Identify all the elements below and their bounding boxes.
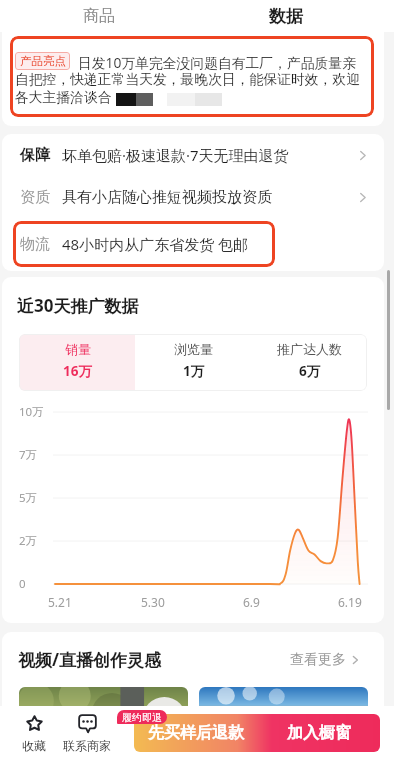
staticText: 6万 (299, 362, 321, 380)
other: 收藏 (25, 714, 44, 733)
staticText: 销量 (65, 341, 91, 357)
staticText: 日发10万单完全没问题自有工厂，产品质量亲 (78, 53, 356, 72)
staticText: 0 (19, 576, 26, 592)
button[interactable]: 联系商家 (58, 706, 116, 770)
button[interactable]: 浏览量 (135, 334, 251, 391)
staticText: 视频/直播创作灵感 (18, 648, 162, 671)
button[interactable] (19, 687, 188, 727)
button[interactable]: 销量 (19, 334, 135, 391)
staticText: 联系商家 (63, 738, 111, 753)
staticText: 浏览量 (174, 341, 213, 357)
staticText: 自把控，快递正常当天发，最晚次日，能保证时效，欢迎 (15, 71, 360, 88)
staticText: 5.30 (141, 594, 165, 610)
staticText: 物流 (20, 235, 50, 254)
staticText: 推广达人数 (277, 341, 342, 357)
button[interactable]: 商品 (68, 0, 129, 32)
staticText: 5万 (19, 490, 38, 506)
staticText: 加入橱窗 (287, 723, 351, 743)
staticText: 7万 (19, 447, 38, 463)
staticText: 产品亮点 (20, 54, 66, 68)
button[interactable]: 加入橱窗 (257, 714, 380, 752)
other: 联系商家 (78, 714, 97, 733)
staticText: 2万 (19, 533, 38, 549)
button[interactable]: 物流 (13, 221, 275, 267)
button[interactable]: 收藏 (5, 706, 63, 770)
staticText: 各大主播洽谈合 (15, 89, 112, 106)
staticText: 收藏 (22, 738, 46, 753)
staticText: 查看更多 (290, 651, 346, 669)
staticText: 履约即退 (122, 711, 162, 724)
button[interactable]: 推广达人数 (251, 334, 367, 391)
staticText: 1万 (183, 362, 205, 380)
button[interactable]: 先买样后退款 (134, 714, 257, 752)
staticText: 5.21 (48, 594, 72, 610)
staticText: 10万 (19, 404, 44, 420)
staticText: 保障 (20, 146, 50, 165)
staticText: 48小时内从广东省发货 包邮 (62, 234, 249, 254)
button[interactable] (199, 687, 368, 727)
staticText: 具有小店随心推短视频投放资质 (62, 188, 272, 207)
staticText: 坏单包赔·极速退款·7天无理由退货 (62, 145, 289, 165)
staticText: 6.19 (338, 594, 362, 610)
staticText: 资质 (20, 188, 50, 207)
button[interactable]: 数据 (256, 0, 316, 32)
staticText: 近30天推广数据 (17, 294, 139, 317)
button[interactable]: 资质 (2, 176, 384, 218)
staticText: 商品 (83, 6, 115, 26)
staticText: 数据 (269, 6, 303, 27)
button[interactable]: 产品亮点 (10, 36, 374, 117)
button[interactable]: 查看更多 (290, 651, 360, 669)
button[interactable]: 保障 (2, 134, 384, 176)
staticText: 6.9 (243, 594, 260, 610)
staticText: 16万 (63, 362, 92, 380)
staticText: 先买样后退款 (148, 723, 244, 743)
